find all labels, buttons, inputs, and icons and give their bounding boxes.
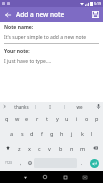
staticText: n — [70, 145, 74, 152]
staticText: e — [25, 115, 29, 122]
button[interactable]: y — [52, 112, 62, 125]
button[interactable]: p — [92, 112, 102, 125]
button[interactable]: Emoji — [25, 156, 34, 170]
button[interactable]: s — [17, 126, 27, 140]
staticText: q — [5, 115, 9, 122]
button[interactable]: Backspace — [88, 141, 102, 155]
button[interactable]: I just have to type.... — [4, 58, 99, 102]
staticText: , — [20, 160, 22, 167]
button[interactable]: More suggestions — [0, 102, 8, 111]
button[interactable]: we — [65, 102, 93, 111]
button[interactable]: Save note — [90, 9, 101, 20]
button[interactable]: k — [77, 126, 87, 140]
staticText: Note name: — [4, 24, 34, 31]
button[interactable]: h — [57, 126, 67, 140]
staticText: ?123 — [5, 161, 12, 165]
staticText: i — [76, 115, 78, 122]
staticText: I — [49, 104, 51, 110]
button[interactable]: b — [55, 141, 66, 155]
button[interactable]: Home — [35, 171, 55, 183]
staticText: Add a new note — [16, 10, 65, 19]
staticText: v — [48, 145, 51, 152]
staticText: 5:19 — [94, 1, 101, 6]
staticText: u — [65, 115, 69, 122]
button[interactable]: It's super simple to add a new note — [4, 34, 99, 44]
staticText: f — [41, 130, 43, 137]
button[interactable]: r — [32, 112, 42, 125]
button[interactable]: w — [12, 112, 22, 125]
button[interactable]: Recent apps — [55, 171, 75, 183]
button[interactable]: q — [1, 112, 12, 125]
button[interactable]: g — [47, 126, 57, 140]
button[interactable]: x — [24, 141, 34, 155]
button[interactable]: l — [87, 126, 97, 140]
button[interactable]: Voice input — [94, 102, 103, 111]
button[interactable]: c — [34, 141, 44, 155]
button[interactable]: o — [82, 112, 92, 125]
button[interactable]: Back — [2, 9, 13, 20]
button[interactable]: d — [27, 126, 37, 140]
staticText: b — [59, 145, 63, 152]
button[interactable]: Shift — [1, 141, 14, 155]
button[interactable]: . — [77, 156, 86, 170]
staticText: x — [28, 145, 31, 152]
staticText: d — [30, 130, 34, 137]
staticText: h — [60, 130, 64, 137]
staticText: k — [81, 130, 84, 137]
button[interactable]: thanks — [8, 102, 35, 111]
staticText: It's super simple to add a new note — [4, 34, 87, 41]
staticText: Your note: — [4, 48, 30, 55]
button[interactable]: , — [16, 156, 25, 170]
staticText: l — [91, 130, 93, 137]
button[interactable]: a — [7, 126, 17, 140]
staticText: . — [81, 160, 83, 167]
button[interactable]: u — [62, 112, 72, 125]
button[interactable]: t — [42, 112, 52, 125]
button[interactable]: I — [36, 102, 64, 111]
button[interactable]: n — [66, 141, 77, 155]
staticText: t — [46, 115, 48, 122]
button[interactable]: i — [72, 112, 82, 125]
staticText: c — [38, 145, 41, 152]
staticText: thanks — [14, 104, 29, 110]
staticText: w — [15, 115, 20, 122]
button[interactable]: ?123 — [1, 156, 16, 170]
staticText: I just have to type.... — [4, 58, 52, 65]
staticText: o — [85, 115, 89, 122]
staticText: a — [10, 130, 14, 137]
button[interactable]: Hide keyboard — [15, 171, 35, 183]
button[interactable]: Switch input method — [75, 171, 95, 183]
button[interactable]: f — [37, 126, 47, 140]
staticText: j — [71, 130, 73, 137]
staticText: m — [80, 145, 86, 152]
staticText: r — [36, 115, 39, 122]
button[interactable]: Enter — [90, 159, 99, 168]
staticText: z — [18, 145, 21, 152]
button[interactable]: z — [14, 141, 24, 155]
button[interactable]: m — [77, 141, 88, 155]
staticText: s — [21, 130, 24, 137]
button[interactable]: v — [44, 141, 55, 155]
staticText: y — [56, 115, 59, 122]
staticText: p — [95, 115, 99, 122]
button[interactable]: j — [67, 126, 77, 140]
staticText: g — [50, 130, 54, 137]
staticText: we — [76, 104, 83, 110]
button[interactable]: e — [22, 112, 32, 125]
